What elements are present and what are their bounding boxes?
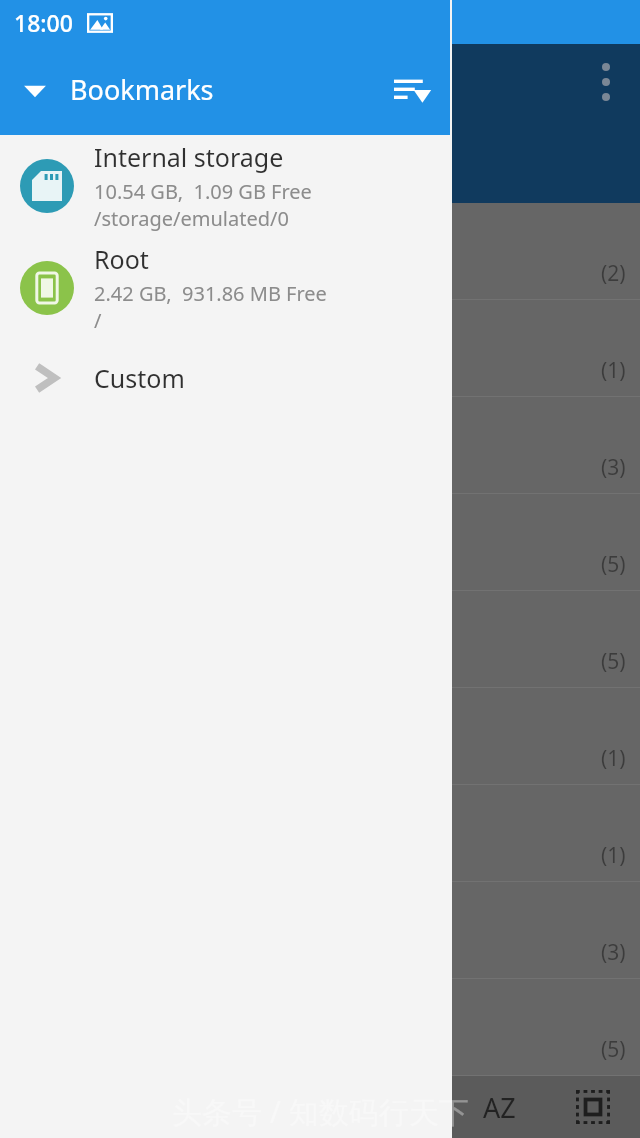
staticText: (2) [601, 259, 626, 288]
button[interactable]: (3) [452, 397, 640, 494]
staticText: 10.54 GB, 1.09 GB Free [94, 178, 312, 205]
button[interactable]: (2) [452, 203, 640, 300]
staticText: Root [94, 242, 149, 276]
staticText: /storage/emulated/0 [94, 205, 289, 232]
button[interactable]: (3) [452, 882, 640, 979]
staticText: Internal storage [94, 140, 284, 174]
button[interactable]: AZ [452, 1076, 546, 1138]
button[interactable]: Root [0, 237, 450, 339]
staticText: (3) [601, 453, 626, 482]
button[interactable]: Internal storage [0, 135, 450, 237]
button[interactable]: Expand bookmarks [0, 44, 70, 135]
staticText: (5) [601, 550, 626, 579]
button[interactable]: Sort [374, 52, 450, 128]
staticText: Custom [94, 361, 185, 395]
staticText: (1) [601, 841, 626, 870]
staticText: / [94, 307, 102, 334]
staticText: 2.42 GB, 931.86 MB Free [94, 280, 327, 307]
staticText: (3) [601, 938, 626, 967]
staticText: (1) [601, 744, 626, 773]
button[interactable]: (5) [452, 494, 640, 591]
staticText: (1) [601, 356, 626, 385]
staticText: Bookmarks [70, 71, 214, 108]
button[interactable]: More options [576, 52, 636, 112]
staticText: (5) [601, 647, 626, 676]
staticText: 头条号 / 知数码行天下 [172, 1091, 469, 1132]
button[interactable]: (5) [452, 979, 640, 1076]
button[interactable]: (5) [452, 591, 640, 688]
button[interactable]: Custom [0, 339, 450, 417]
staticText: (5) [601, 1035, 626, 1064]
staticText: 18:00 [14, 7, 73, 38]
staticText: AZ [483, 1089, 516, 1126]
button[interactable]: Select [546, 1076, 640, 1138]
